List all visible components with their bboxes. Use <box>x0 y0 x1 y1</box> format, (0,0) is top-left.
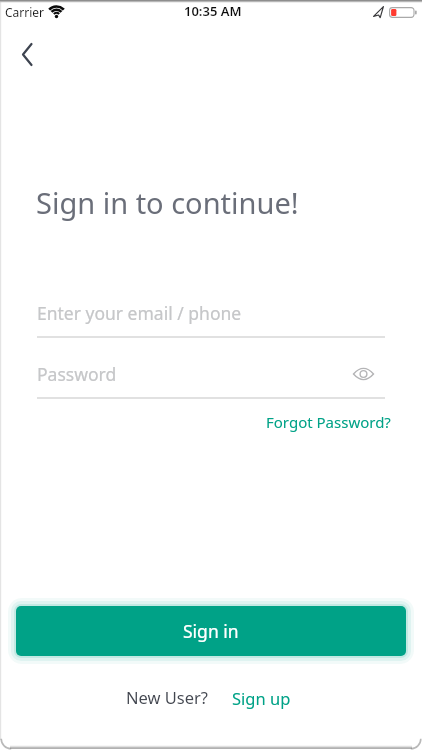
button[interactable] <box>10 38 44 70</box>
staticText: Sign up <box>232 687 291 709</box>
staticText: Password <box>37 362 117 386</box>
button[interactable]: Sign in <box>16 606 406 656</box>
staticText: 10:35 AM <box>184 2 242 20</box>
staticText: Sign in <box>183 619 239 643</box>
button[interactable]: Password <box>37 355 385 399</box>
button[interactable]: Sign up <box>226 682 285 704</box>
button[interactable]: Enter your email / phone <box>37 294 385 338</box>
button[interactable]: Forgot Password? <box>254 404 379 424</box>
staticText: Sign in to continue! <box>36 183 299 222</box>
staticText: Enter your email / phone <box>37 301 242 325</box>
staticText: Carrier <box>5 4 45 20</box>
staticText: New User? <box>126 686 209 708</box>
staticText: Forgot Password? <box>266 412 391 432</box>
